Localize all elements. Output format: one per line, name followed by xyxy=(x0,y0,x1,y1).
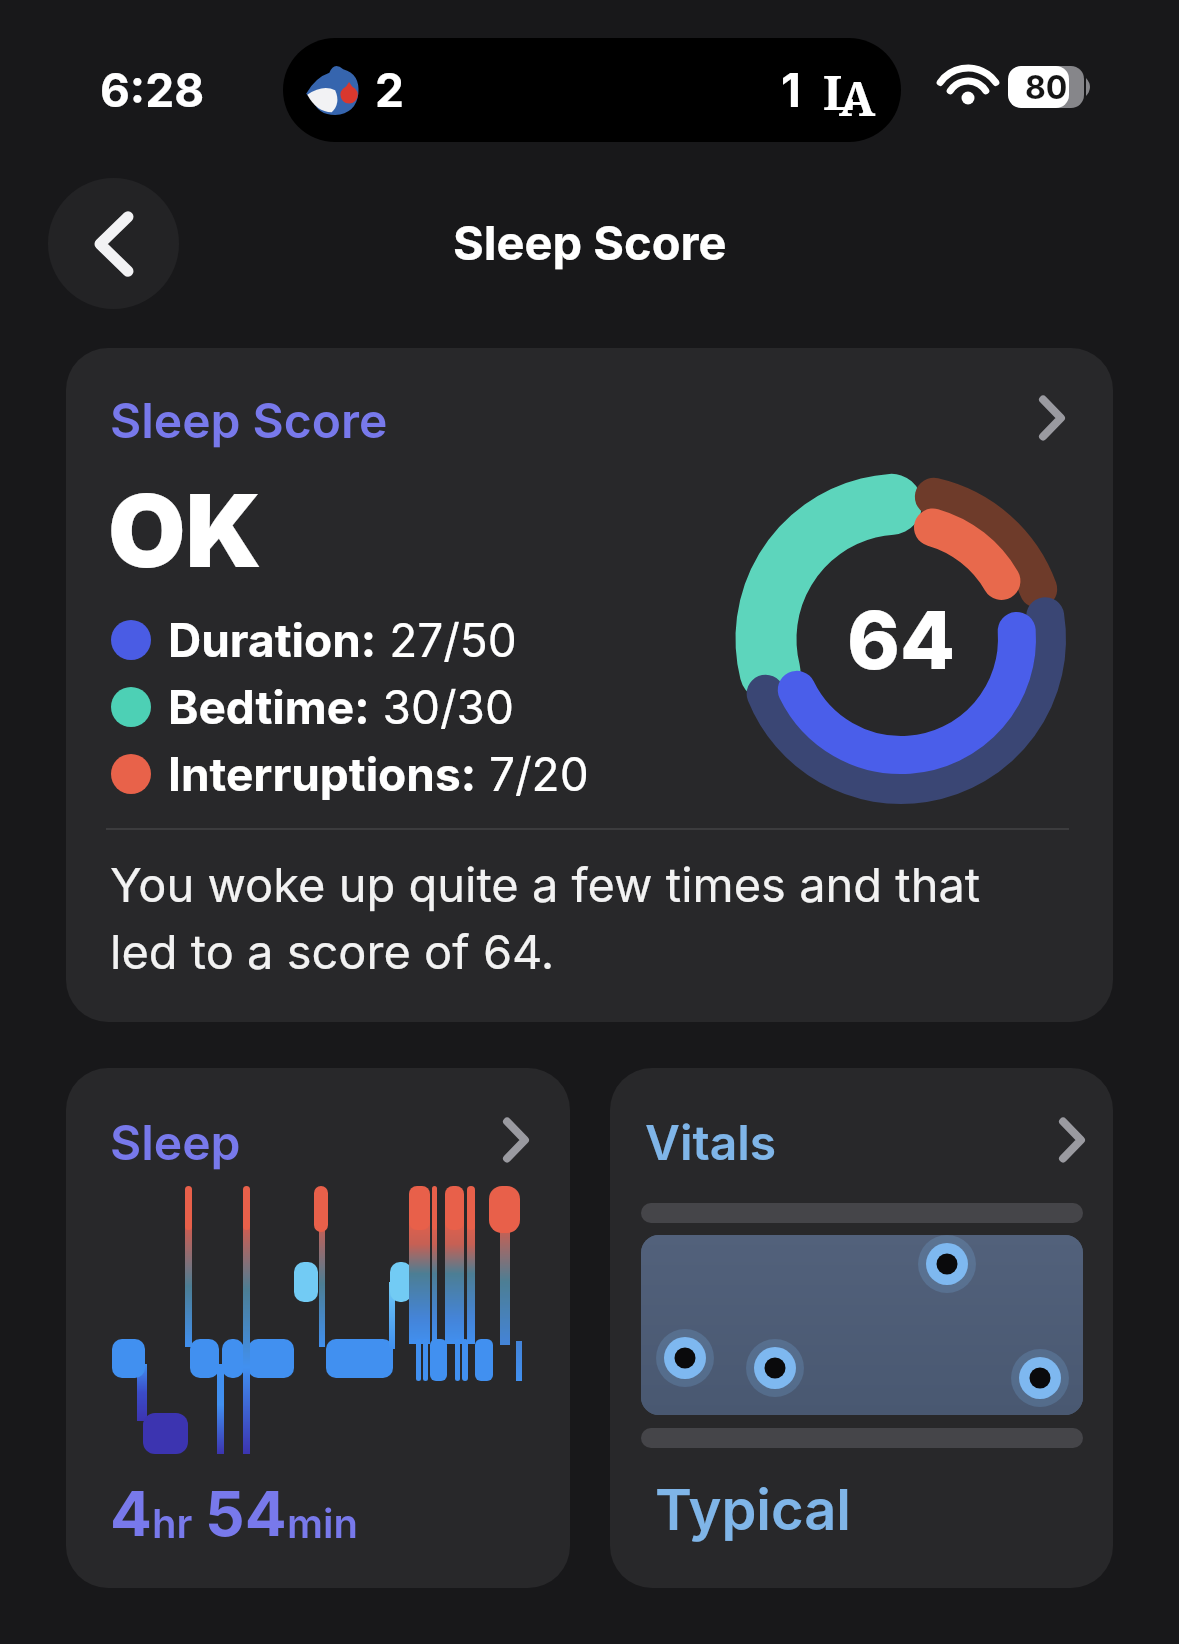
staticText: Typical xyxy=(655,1476,851,1544)
staticText: L xyxy=(823,59,855,124)
staticText: 80 xyxy=(1025,68,1068,107)
button[interactable]: Sleep Score xyxy=(66,348,1113,1022)
staticText: 64 xyxy=(847,591,956,688)
staticText: min xyxy=(287,1499,358,1547)
button[interactable] xyxy=(48,178,179,309)
button[interactable]: Sleep xyxy=(66,1068,570,1588)
staticText: OK xyxy=(108,470,262,591)
button[interactable]: Vitals xyxy=(610,1068,1113,1588)
staticText: 54 xyxy=(205,1476,287,1551)
staticText: 1 xyxy=(781,62,801,118)
staticText: 4 xyxy=(110,1476,152,1551)
staticText: You woke up quite a few times and that l… xyxy=(110,856,981,980)
staticText: Sleep Score xyxy=(110,391,388,449)
staticText: 2 xyxy=(375,62,404,118)
staticText: Bedtime: 30/30 xyxy=(168,679,514,735)
staticText: Sleep xyxy=(110,1113,241,1171)
staticText: hr xyxy=(152,1499,193,1547)
staticText: Duration: 27/50 xyxy=(168,612,517,668)
staticText: Interruptions: 7/20 xyxy=(168,746,589,802)
staticText: Vitals xyxy=(645,1113,777,1171)
staticText: A xyxy=(839,65,876,130)
staticText: 6:28 xyxy=(100,62,205,118)
staticText: Sleep Score xyxy=(453,214,727,271)
